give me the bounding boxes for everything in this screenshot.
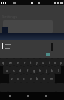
button[interactable]: l	[55, 66, 61, 74]
button[interactable]: Recents	[42, 92, 50, 100]
button[interactable]: u	[40, 58, 46, 66]
button[interactable]: p	[58, 58, 64, 66]
staticText: a	[6, 68, 8, 73]
staticText: p	[60, 60, 63, 65]
staticText: k	[51, 68, 53, 73]
button[interactable]: z	[9, 74, 15, 83]
staticText: l	[58, 68, 59, 73]
button[interactable]: i	[46, 58, 52, 66]
staticText: e	[17, 60, 19, 65]
button[interactable]: m	[48, 74, 55, 83]
button[interactable]: k	[49, 66, 55, 74]
staticText: r	[24, 60, 26, 65]
button[interactable]	[0, 33, 64, 40]
staticText: c	[23, 76, 25, 81]
staticText: m	[50, 76, 54, 81]
staticText: Settings	[2, 14, 18, 19]
staticText: y	[36, 60, 38, 65]
button[interactable]: Home	[24, 92, 32, 100]
button[interactable]: w	[7, 58, 14, 66]
staticText: w	[9, 60, 12, 65]
button[interactable]	[3, 20, 53, 33]
button[interactable]: h	[37, 66, 43, 74]
button[interactable]: t	[28, 58, 34, 66]
button[interactable]: n	[41, 74, 48, 83]
staticText: z	[11, 76, 13, 81]
staticText: o	[54, 60, 57, 65]
button[interactable]: d	[17, 66, 24, 74]
button[interactable]: r	[21, 58, 28, 66]
staticText: u	[42, 60, 45, 65]
staticText: g	[33, 68, 36, 73]
button[interactable]: c	[21, 74, 27, 83]
button[interactable]: e	[14, 58, 21, 66]
staticText: j	[46, 68, 47, 73]
button[interactable]: Back	[6, 92, 14, 100]
button[interactable]: q	[0, 58, 7, 66]
staticText: d	[19, 68, 22, 73]
staticText: h	[39, 68, 42, 73]
staticText: n	[43, 76, 46, 81]
staticText: s	[13, 68, 15, 73]
button[interactable]: f	[24, 66, 31, 74]
button[interactable]: a	[3, 66, 10, 74]
button[interactable]: s	[10, 66, 17, 74]
button[interactable]: o	[52, 58, 58, 66]
staticText: b	[36, 76, 39, 81]
staticText: i	[49, 60, 50, 65]
staticText: q	[2, 60, 5, 65]
staticText: t	[30, 60, 32, 65]
staticText: v	[30, 76, 32, 81]
button[interactable]: g	[31, 66, 37, 74]
button[interactable]: b	[34, 74, 41, 83]
staticText: x	[17, 76, 19, 81]
button[interactable]: y	[34, 58, 40, 66]
button[interactable]: x	[15, 74, 21, 83]
button[interactable]: v	[27, 74, 34, 83]
button[interactable]: j	[43, 66, 49, 74]
staticText: f	[27, 68, 29, 73]
